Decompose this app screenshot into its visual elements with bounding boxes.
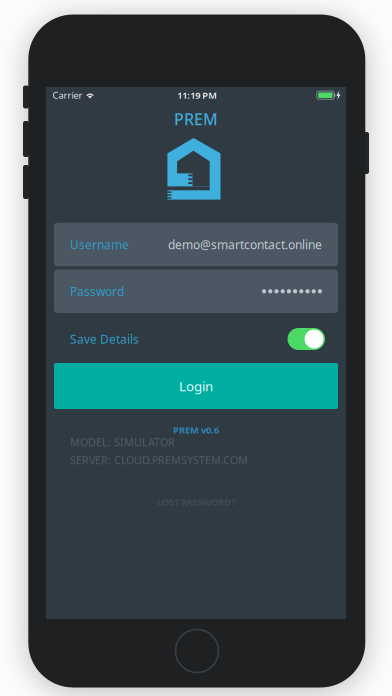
staticText: demo@smartcontact.online <box>168 236 322 252</box>
staticText: MODEL: SIMULATOR <box>70 435 175 449</box>
button[interactable]: Save Details <box>287 328 325 350</box>
staticText: Login <box>179 377 213 395</box>
staticText: Username <box>70 236 129 252</box>
button[interactable]: Username <box>54 223 338 266</box>
button[interactable]: Password <box>54 270 338 313</box>
staticText: PREM <box>174 108 218 130</box>
button[interactable]: Login <box>54 363 338 409</box>
staticText: SERVER: CLOUD.PREMSYSTEM.COM <box>70 453 248 467</box>
staticText: Save Details <box>70 331 139 347</box>
staticText: PREM v0.6 <box>173 424 219 436</box>
staticText: Password <box>70 283 124 299</box>
staticText: 11:19 PM <box>177 89 217 101</box>
staticText: LOST PASSWORD? <box>157 496 235 508</box>
button[interactable]: LOST PASSWORD? <box>157 494 235 510</box>
staticText: Carrier <box>53 89 83 101</box>
